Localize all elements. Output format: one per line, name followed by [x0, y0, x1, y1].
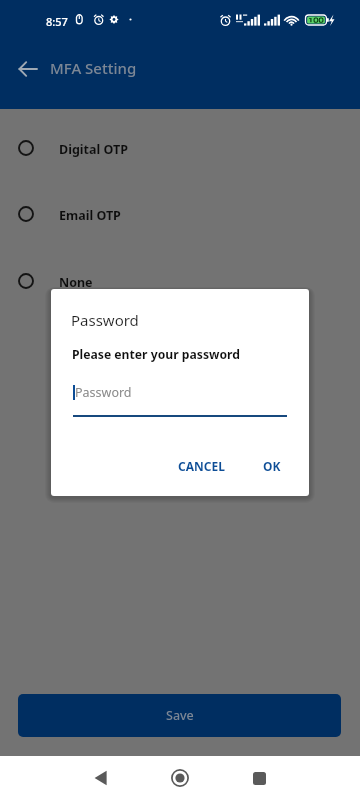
- button[interactable]: Recent apps: [237, 756, 281, 800]
- button[interactable]: CANCEL: [160, 448, 243, 484]
- staticText: CANCEL: [178, 458, 225, 474]
- button[interactable]: Home: [158, 756, 202, 800]
- staticText: OK: [263, 458, 281, 474]
- button[interactable]: Digital OTP: [0, 126, 360, 170]
- staticText: Please enter your password: [72, 346, 241, 363]
- button[interactable]: OK: [250, 448, 294, 484]
- button[interactable]: Save: [18, 694, 341, 737]
- staticText: Password: [75, 384, 132, 401]
- staticText: Email OTP: [59, 207, 121, 224]
- staticText: Save: [166, 707, 194, 724]
- button[interactable]: Back: [4, 45, 52, 93]
- staticText: MFA Setting: [50, 58, 137, 78]
- button[interactable]: Back: [79, 756, 123, 800]
- staticText: 8:57: [46, 14, 68, 29]
- staticText: Password: [71, 310, 139, 330]
- button[interactable]: None: [0, 259, 360, 303]
- button[interactable]: Email OTP: [0, 192, 360, 236]
- staticText: None: [59, 274, 93, 291]
- staticText: Digital OTP: [59, 141, 128, 158]
